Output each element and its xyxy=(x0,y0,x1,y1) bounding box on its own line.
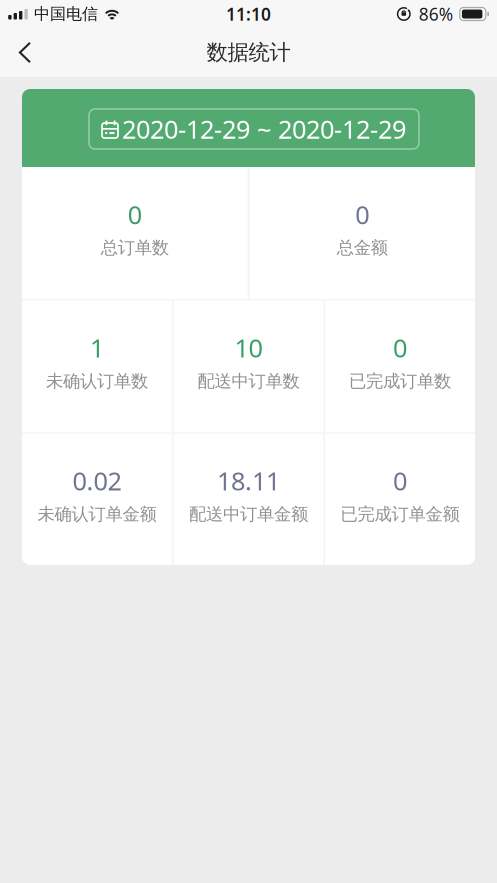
staticText: 0 xyxy=(128,197,142,231)
staticText: 11:10 xyxy=(226,2,271,25)
staticText: 0 xyxy=(393,464,407,497)
staticText: 配送中订单数 xyxy=(197,371,299,392)
staticText: 未确认订单金额 xyxy=(37,503,156,525)
staticText: 10 xyxy=(234,331,262,364)
staticText: 0 xyxy=(393,331,407,364)
staticText: 配送中订单金额 xyxy=(189,503,308,525)
staticText: 已完成订单金额 xyxy=(340,503,459,525)
staticText: 总订单数 xyxy=(101,237,169,258)
button[interactable]: 2020-12-29 ~ 2020-12-29 xyxy=(89,109,419,149)
staticText: 0.02 xyxy=(72,464,121,497)
staticText: 0 xyxy=(355,197,369,231)
button[interactable]: Back xyxy=(0,28,50,76)
staticText: 总金额 xyxy=(337,237,388,258)
staticText: 已完成订单数 xyxy=(349,371,451,392)
staticText: 18.11 xyxy=(217,464,280,497)
staticText: 中国电信 xyxy=(34,4,98,24)
staticText: 86% xyxy=(419,2,453,25)
staticText: 1 xyxy=(90,331,104,364)
staticText: 数据统计 xyxy=(206,39,290,66)
staticText: 2020-12-29 ~ 2020-12-29 xyxy=(122,112,406,146)
staticText: 未确认订单数 xyxy=(46,371,148,392)
